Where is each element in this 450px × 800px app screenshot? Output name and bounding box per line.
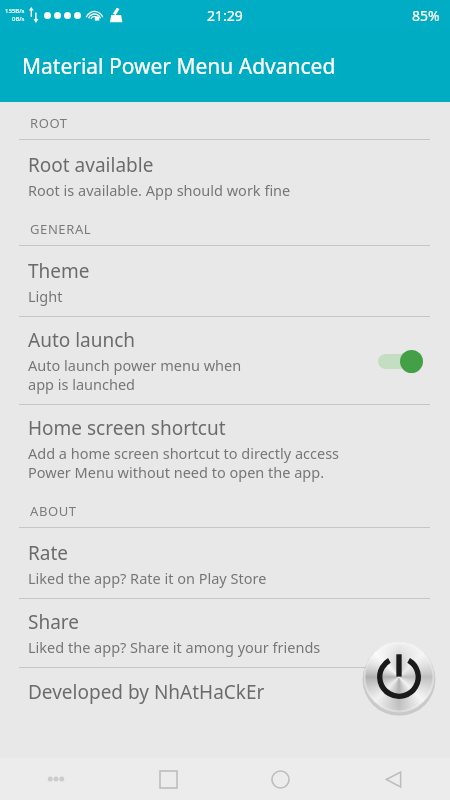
staticText: Liked the app? Rate it on Play Store	[28, 568, 267, 588]
button[interactable]: Back	[337, 771, 450, 788]
staticText: GENERAL	[30, 220, 92, 238]
button[interactable]: Developed by NhAtHaCkEr	[0, 668, 450, 715]
button[interactable]: Auto launch toggle	[374, 346, 430, 376]
button[interactable]: Auto launch	[0, 317, 450, 404]
button[interactable]: Rate	[0, 528, 450, 598]
staticText: Light	[28, 286, 63, 306]
button[interactable]: Theme	[0, 246, 450, 316]
staticText: Material Power Menu Advanced	[22, 52, 336, 81]
staticText: Theme	[28, 258, 90, 284]
staticText: 0B/s	[12, 15, 25, 23]
button[interactable]: Menu	[0, 776, 112, 782]
staticText: 85%	[412, 6, 440, 25]
staticText: Rate	[28, 540, 69, 566]
staticText: 155B/s	[5, 7, 25, 15]
button[interactable]: Power menu	[356, 634, 442, 720]
staticText: Root available	[28, 152, 154, 178]
button[interactable]: Home	[224, 770, 337, 789]
staticText: ROOT	[30, 114, 68, 132]
staticText: 21:29	[207, 6, 243, 25]
staticText: Root is available. App should work fine	[28, 180, 291, 200]
staticText: ABOUT	[30, 502, 77, 520]
staticText: Auto launch	[28, 327, 136, 353]
staticText: Developed by NhAtHaCkEr	[28, 679, 265, 705]
staticText: Auto launch power menu when app is launc…	[28, 355, 242, 394]
button[interactable]: Share	[0, 599, 450, 667]
staticText: Share	[28, 609, 80, 635]
button[interactable]: Home screen shortcut	[0, 405, 450, 490]
button[interactable]: Root available	[0, 140, 450, 208]
staticText: Add a home screen shortcut to directly a…	[28, 443, 340, 482]
staticText: Home screen shortcut	[28, 415, 226, 441]
button[interactable]: Recents	[112, 771, 224, 788]
staticText: Liked the app? Share it among your frien…	[28, 637, 321, 657]
